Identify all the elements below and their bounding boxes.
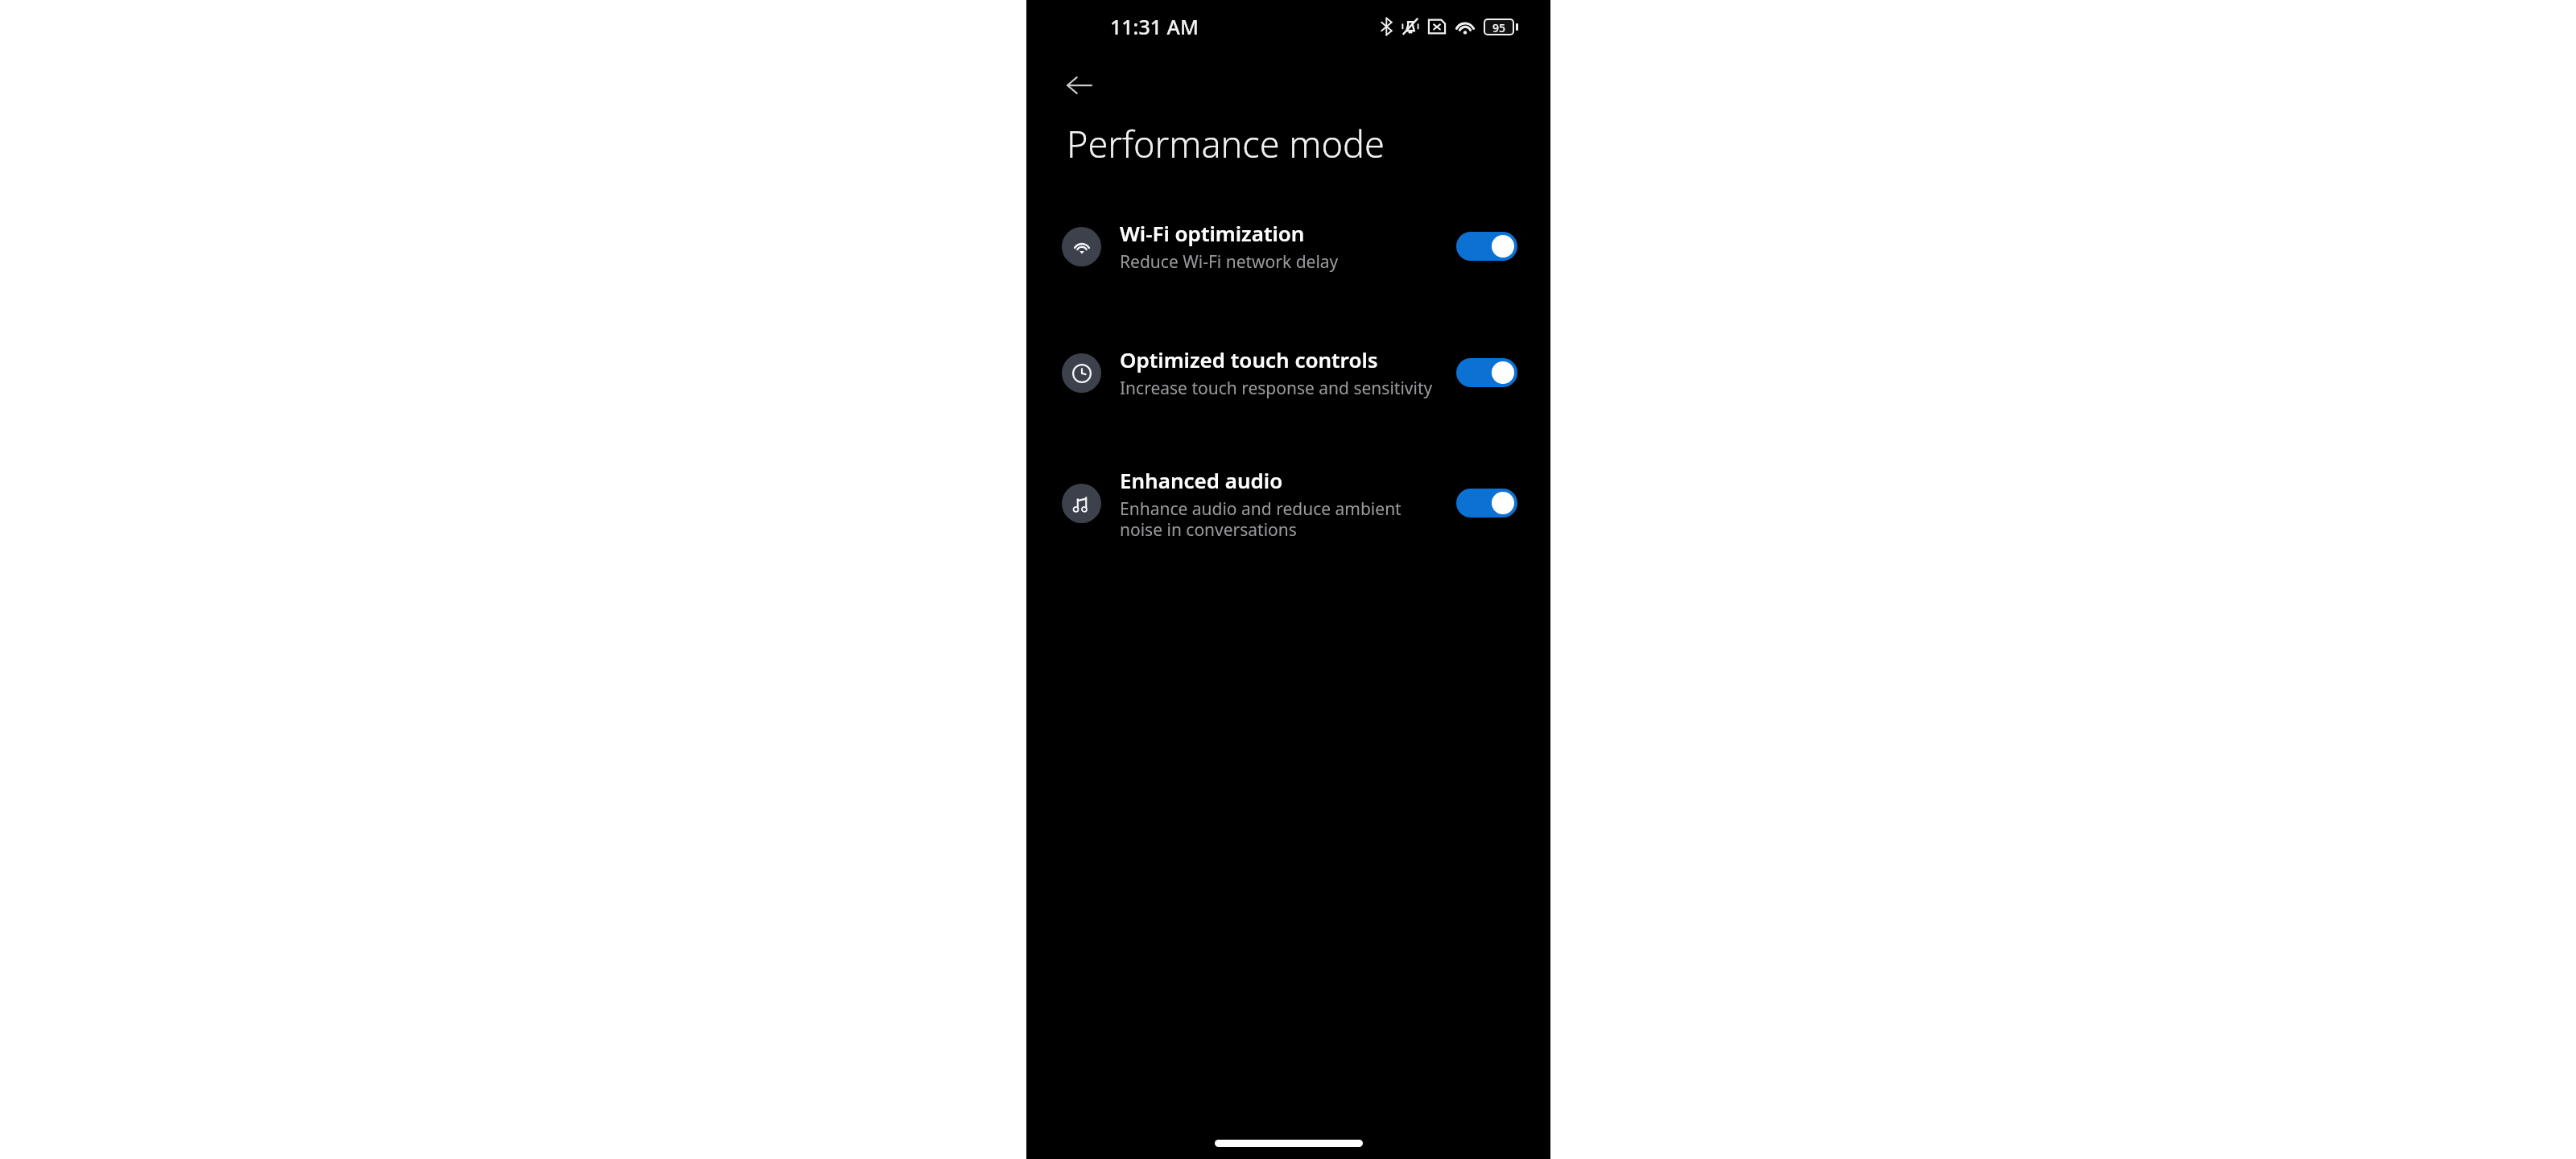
staticText: Wi-Fi optimization bbox=[1120, 219, 1305, 247]
button[interactable]: Wi-Fi optimization bbox=[1456, 232, 1517, 261]
staticText: 95 bbox=[1492, 20, 1506, 34]
button[interactable]: Enhanced audio bbox=[1026, 464, 1550, 542]
button[interactable]: Optimized touch controls bbox=[1026, 338, 1550, 407]
button[interactable]: Optimized touch controls bbox=[1456, 358, 1517, 387]
staticText: Performance mode bbox=[1067, 119, 1385, 168]
button[interactable]: Wi-Fi optimization bbox=[1026, 212, 1550, 281]
staticText: Enhanced audio bbox=[1120, 466, 1283, 494]
staticText: Optimized touch controls bbox=[1120, 345, 1378, 373]
staticText: Reduce Wi-Fi network delay bbox=[1120, 250, 1339, 274]
staticText: 11:31 AM bbox=[1110, 13, 1199, 40]
button[interactable]: Back bbox=[1054, 60, 1105, 111]
staticText: Increase touch response and sensitivity bbox=[1120, 377, 1433, 400]
staticText: Enhance audio and reduce ambient noise i… bbox=[1120, 497, 1445, 541]
button[interactable]: Enhanced audio bbox=[1456, 489, 1517, 518]
